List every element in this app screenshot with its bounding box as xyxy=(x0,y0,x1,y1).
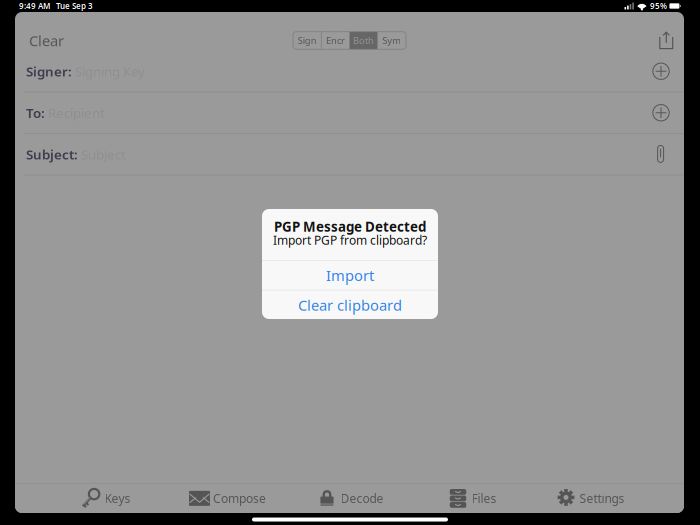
staticText: Sym xyxy=(382,34,401,47)
staticText: Clear clipboard xyxy=(298,295,402,315)
button[interactable]: Import xyxy=(262,261,438,290)
staticText: Tue Sep 3 xyxy=(56,1,93,11)
staticText: Compose xyxy=(213,490,266,506)
button[interactable]: Clear xyxy=(15,30,72,51)
staticText: Clear xyxy=(29,31,64,50)
button[interactable]: Add xyxy=(646,134,676,174)
staticText: Recipient xyxy=(48,104,105,122)
staticText: Encr xyxy=(326,34,345,47)
staticText: Signer: xyxy=(26,62,72,80)
button[interactable]: Share xyxy=(654,30,678,51)
button[interactable]: Sym xyxy=(378,32,405,49)
staticText: Files xyxy=(471,490,496,506)
staticText: Import xyxy=(326,265,374,285)
button[interactable]: Clear clipboard xyxy=(262,290,438,319)
staticText: Keys xyxy=(104,490,130,506)
button[interactable]: Settings xyxy=(535,484,645,513)
staticText: 95% xyxy=(650,1,667,11)
staticText: Signing Key xyxy=(75,62,145,80)
button[interactable]: Decode xyxy=(295,484,405,513)
staticText: Settings xyxy=(579,490,624,506)
button[interactable]: Add xyxy=(646,92,676,133)
staticText: 9:49 AM xyxy=(19,1,50,11)
staticText: PGP Message Detected xyxy=(274,218,426,235)
button[interactable]: Add xyxy=(646,51,676,91)
button[interactable]: Keys xyxy=(50,484,160,513)
staticText: Decode xyxy=(340,490,383,506)
button[interactable]: Sign xyxy=(293,32,321,49)
staticText: Subject xyxy=(81,145,126,163)
staticText: Import PGP from clipboard? xyxy=(273,232,427,248)
button[interactable]: Files xyxy=(417,484,527,513)
button[interactable]: Compose xyxy=(172,484,282,513)
button[interactable]: Both xyxy=(350,32,377,49)
staticText: Both xyxy=(353,34,374,47)
staticText: To: xyxy=(26,104,45,122)
button[interactable]: Encr xyxy=(322,32,349,49)
staticText: Subject: xyxy=(26,145,78,163)
staticText: Sign xyxy=(298,34,317,47)
